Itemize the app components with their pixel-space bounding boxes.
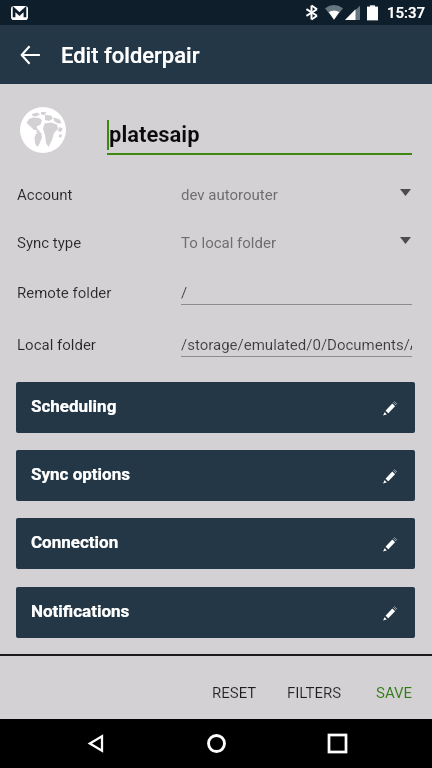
button[interactable]: Local folder xyxy=(0,327,432,371)
button[interactable]: Back xyxy=(72,719,120,767)
button[interactable]: SAVE xyxy=(365,675,423,711)
staticText: Connection xyxy=(31,532,119,552)
staticText: Notifications xyxy=(31,601,130,621)
staticText: platesaip xyxy=(109,122,200,148)
button[interactable]: Notifications xyxy=(16,587,415,638)
staticText: 15:37 xyxy=(387,4,426,22)
staticText: Sync type xyxy=(17,234,82,252)
button[interactable]: Sync type xyxy=(0,225,432,269)
button[interactable]: Edit Scheduling xyxy=(374,391,407,424)
button[interactable]: Edit Connection xyxy=(374,527,407,560)
staticText: Scheduling xyxy=(31,396,117,416)
staticText: Edit folderpair xyxy=(61,43,200,69)
staticText: SAVE xyxy=(376,684,413,702)
button[interactable]: Scheduling xyxy=(16,382,415,433)
button[interactable]: FILTERS xyxy=(276,675,352,711)
button[interactable]: Edit Notifications xyxy=(374,596,407,629)
button[interactable]: Connection xyxy=(16,518,415,569)
button[interactable]: Home xyxy=(192,719,240,767)
staticText: Remote folder xyxy=(17,284,112,302)
staticText: dev autorouter xyxy=(181,186,278,204)
staticText: Local folder xyxy=(17,336,96,354)
staticText: /storage/emulated/0/Documents/A xyxy=(181,336,412,354)
staticText: / xyxy=(181,284,188,302)
button[interactable]: Sync options xyxy=(16,450,415,501)
button[interactable]: Navigate up xyxy=(6,31,53,78)
button[interactable]: Recent apps xyxy=(313,719,361,767)
staticText: FILTERS xyxy=(287,684,342,702)
staticText: RESET xyxy=(212,684,257,702)
button[interactable]: RESET xyxy=(201,675,268,711)
staticText: To local folder xyxy=(181,234,276,252)
staticText: Account xyxy=(17,186,73,204)
staticText: Sync options xyxy=(31,464,130,484)
button[interactable]: Account xyxy=(0,177,432,221)
button[interactable]: Edit Sync options xyxy=(374,459,407,492)
button[interactable]: platesaip xyxy=(107,104,412,159)
button[interactable]: Remote folder xyxy=(0,275,432,319)
